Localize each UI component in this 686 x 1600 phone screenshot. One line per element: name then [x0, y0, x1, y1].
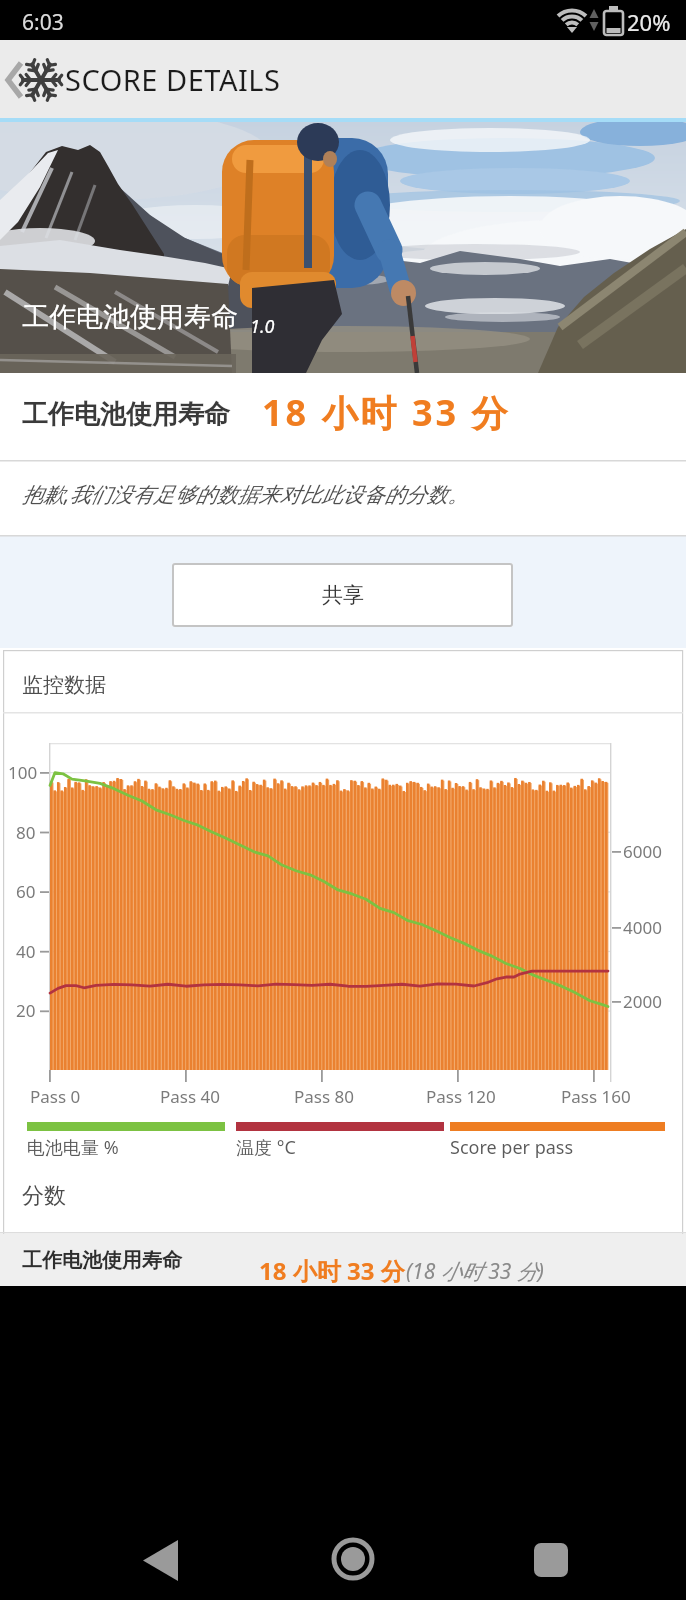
staticText: 1.0	[250, 314, 275, 339]
staticText: 60	[16, 880, 36, 903]
staticText: 18 小时 33 分	[262, 388, 511, 437]
staticText: 工作电池使用寿命	[22, 1248, 182, 1273]
staticText: 20%	[627, 7, 671, 37]
button[interactable]: 共享	[172, 563, 513, 627]
staticText: Pass 80	[294, 1085, 354, 1108]
button[interactable]	[490, 1520, 600, 1600]
staticText: 80	[16, 821, 36, 844]
staticText: 分数	[22, 1182, 66, 1210]
staticText: 抱歉,我们没有足够的数据来对比此设备的分数。	[22, 480, 469, 509]
staticText: 100	[8, 761, 38, 784]
staticText: 40	[16, 940, 36, 963]
staticText: 4000	[623, 916, 662, 939]
staticText: SCORE DETAILS	[65, 60, 281, 99]
button[interactable]	[300, 1520, 410, 1600]
staticText: (18 小时 33 分)	[406, 1257, 544, 1286]
staticText: 工作电池使用寿命	[22, 300, 238, 334]
staticText: Pass 160	[561, 1085, 631, 1108]
staticText: Pass 40	[160, 1085, 220, 1108]
staticText: Score per pass	[450, 1135, 574, 1160]
staticText: Pass 0	[30, 1085, 81, 1108]
staticText: 6000	[623, 840, 662, 863]
staticText: Pass 120	[426, 1085, 496, 1108]
staticText: 共享	[322, 582, 364, 608]
staticText: 18 小时 33 分	[259, 1254, 405, 1287]
staticText: 监控数据	[22, 672, 106, 698]
staticText: 工作电池使用寿命	[22, 398, 230, 431]
button[interactable]	[110, 1520, 220, 1600]
staticText: 6:03	[22, 8, 64, 37]
staticText: 20	[16, 999, 36, 1022]
staticText: 温度 °C	[236, 1135, 296, 1160]
staticText: 电池电量 %	[27, 1135, 119, 1160]
button[interactable]	[0, 40, 60, 118]
staticText: 2000	[623, 990, 662, 1013]
